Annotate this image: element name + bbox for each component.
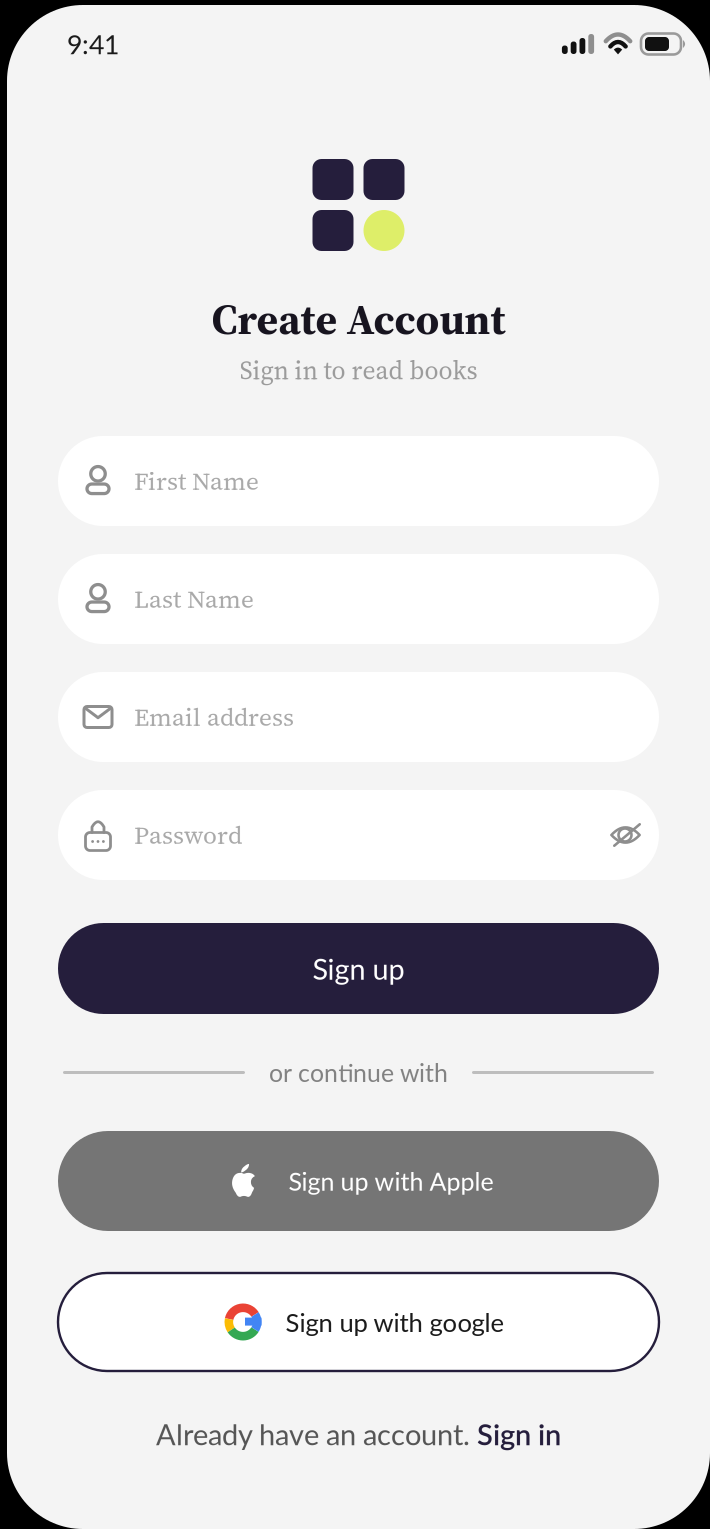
button[interactable]: Sign up with google <box>58 1273 659 1371</box>
button[interactable]: Sign up <box>58 923 659 1014</box>
staticText: Sign up with google <box>285 1307 504 1337</box>
staticText: First Name <box>134 464 259 498</box>
button[interactable]: Sign up with Apple <box>58 1131 659 1231</box>
staticText: Sign in <box>477 1417 561 1451</box>
staticText: Already have an account. <box>156 1417 477 1451</box>
staticText: Sign up with Apple <box>288 1166 493 1196</box>
button[interactable]: First Name <box>58 436 659 526</box>
staticText: Sign up <box>312 951 404 986</box>
staticText: Last Name <box>134 582 254 616</box>
staticText: Create Account <box>211 289 505 348</box>
staticText: or continue with <box>269 1058 448 1087</box>
staticText: Sign in to read books <box>239 353 477 388</box>
button[interactable]: Last Name <box>58 554 659 644</box>
button[interactable]: Password <box>58 790 659 880</box>
staticText: Email address <box>134 700 294 734</box>
staticText: Password <box>134 818 242 852</box>
button[interactable]: Already have an account. <box>156 1418 561 1450</box>
button[interactable]: Email address <box>58 672 659 762</box>
staticText: 9:41 <box>67 28 119 60</box>
